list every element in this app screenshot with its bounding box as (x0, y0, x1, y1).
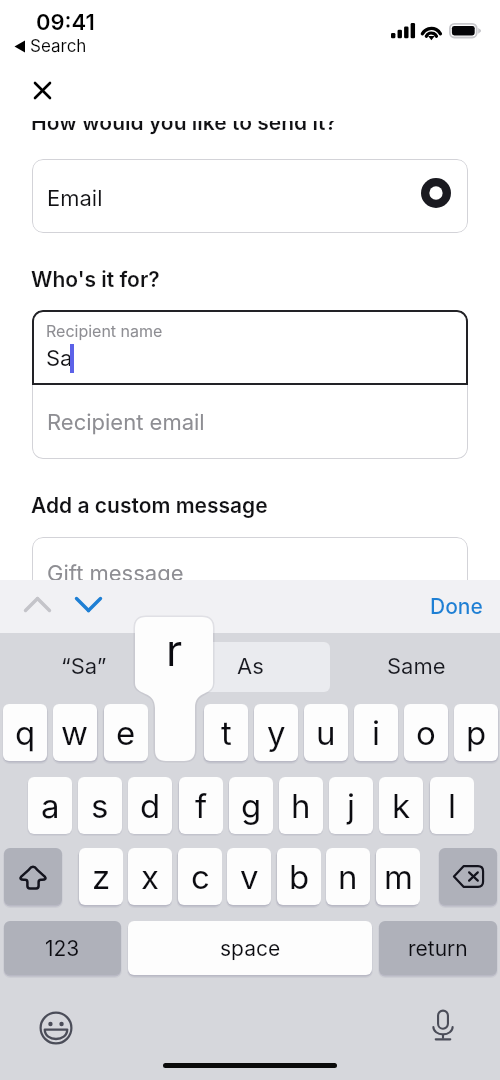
staticText: 09:41 (36, 9, 95, 36)
staticText: i (372, 713, 380, 753)
staticText: g (241, 786, 262, 826)
staticText: r (166, 624, 183, 676)
button[interactable]: 123 (4, 921, 121, 975)
staticText: y (267, 713, 286, 753)
staticText: Add a custom message (31, 493, 268, 518)
button[interactable]: q (3, 704, 47, 761)
staticText: Recipient name (46, 321, 163, 340)
button[interactable]: Recipient email (32, 384, 468, 459)
button[interactable]: a (28, 777, 72, 834)
staticText: Done (430, 594, 483, 619)
staticText: o (416, 713, 436, 753)
button[interactable]: g (229, 777, 273, 834)
staticText: return (408, 936, 468, 961)
button[interactable]: return (379, 921, 497, 975)
button[interactable] (154, 704, 198, 761)
staticText: l (448, 786, 456, 826)
staticText: Who's it for? (31, 267, 160, 292)
staticText: w (61, 713, 89, 753)
staticText: k (392, 786, 411, 826)
button[interactable]: e (104, 704, 148, 761)
button[interactable]: d (128, 777, 172, 834)
staticText: p (466, 713, 487, 753)
staticText: Search (30, 36, 87, 57)
staticText: c (191, 857, 210, 897)
staticText: m (384, 857, 413, 897)
button[interactable]: Gift message (32, 537, 468, 581)
button[interactable]: p (454, 704, 498, 761)
staticText: t (221, 713, 232, 753)
staticText: f (195, 786, 208, 826)
staticText: Recipient email (47, 409, 205, 436)
button[interactable]: h (279, 777, 323, 834)
button[interactable]: w (53, 704, 97, 761)
staticText: “Sa” (61, 653, 107, 680)
button[interactable]: Backspace (439, 848, 497, 905)
staticText: j (347, 786, 355, 826)
button[interactable]: Email (32, 159, 468, 233)
button[interactable]: u (304, 704, 348, 761)
button[interactable]: Search (14, 36, 87, 57)
staticText: Same (387, 653, 446, 680)
button[interactable]: m (376, 848, 420, 905)
button[interactable]: s (78, 777, 122, 834)
button[interactable]: Emoji keyboard (33, 1005, 78, 1050)
button[interactable]: c (178, 848, 222, 905)
staticText: Gift message (47, 560, 184, 581)
staticText: x (141, 857, 160, 897)
staticText: Email (47, 185, 103, 212)
button[interactable]: b (277, 848, 321, 905)
staticText: h (291, 786, 311, 826)
button[interactable]: Next field (67, 589, 109, 619)
staticText: a (41, 786, 60, 826)
button[interactable]: Previous field (16, 589, 58, 619)
button[interactable]: As (167, 633, 333, 700)
staticText: How would you like to send it? (31, 121, 337, 135)
staticText: e (116, 713, 136, 753)
button[interactable]: x (128, 848, 172, 905)
button[interactable]: l (430, 777, 474, 834)
button[interactable]: Shift (4, 848, 62, 905)
staticText: 123 (45, 936, 80, 961)
staticText: As (237, 653, 264, 680)
button[interactable]: y (254, 704, 298, 761)
button[interactable]: f (179, 777, 223, 834)
staticText: u (316, 713, 336, 753)
staticText: z (92, 857, 111, 897)
button[interactable]: space (128, 921, 372, 975)
staticText: v (240, 857, 259, 897)
button[interactable]: k (379, 777, 423, 834)
staticText: q (15, 713, 36, 753)
staticText: d (140, 786, 161, 826)
button[interactable]: n (326, 848, 370, 905)
button[interactable]: t (204, 704, 248, 761)
button[interactable]: v (227, 848, 271, 905)
button[interactable]: Dictation (420, 1003, 465, 1048)
button[interactable]: Recipient name (32, 310, 468, 385)
button[interactable]: j (329, 777, 373, 834)
button[interactable]: “Sa” (0, 633, 167, 700)
staticText: b (289, 857, 310, 897)
staticText: n (338, 857, 358, 897)
button[interactable]: o (404, 704, 448, 761)
button[interactable]: i (354, 704, 398, 761)
button[interactable]: Done (419, 589, 489, 623)
staticText: s (91, 786, 109, 826)
button[interactable]: Same (333, 633, 500, 700)
staticText: Sa (46, 345, 73, 372)
button[interactable]: Close (26, 74, 59, 107)
staticText: space (220, 936, 281, 961)
button[interactable]: z (79, 848, 123, 905)
